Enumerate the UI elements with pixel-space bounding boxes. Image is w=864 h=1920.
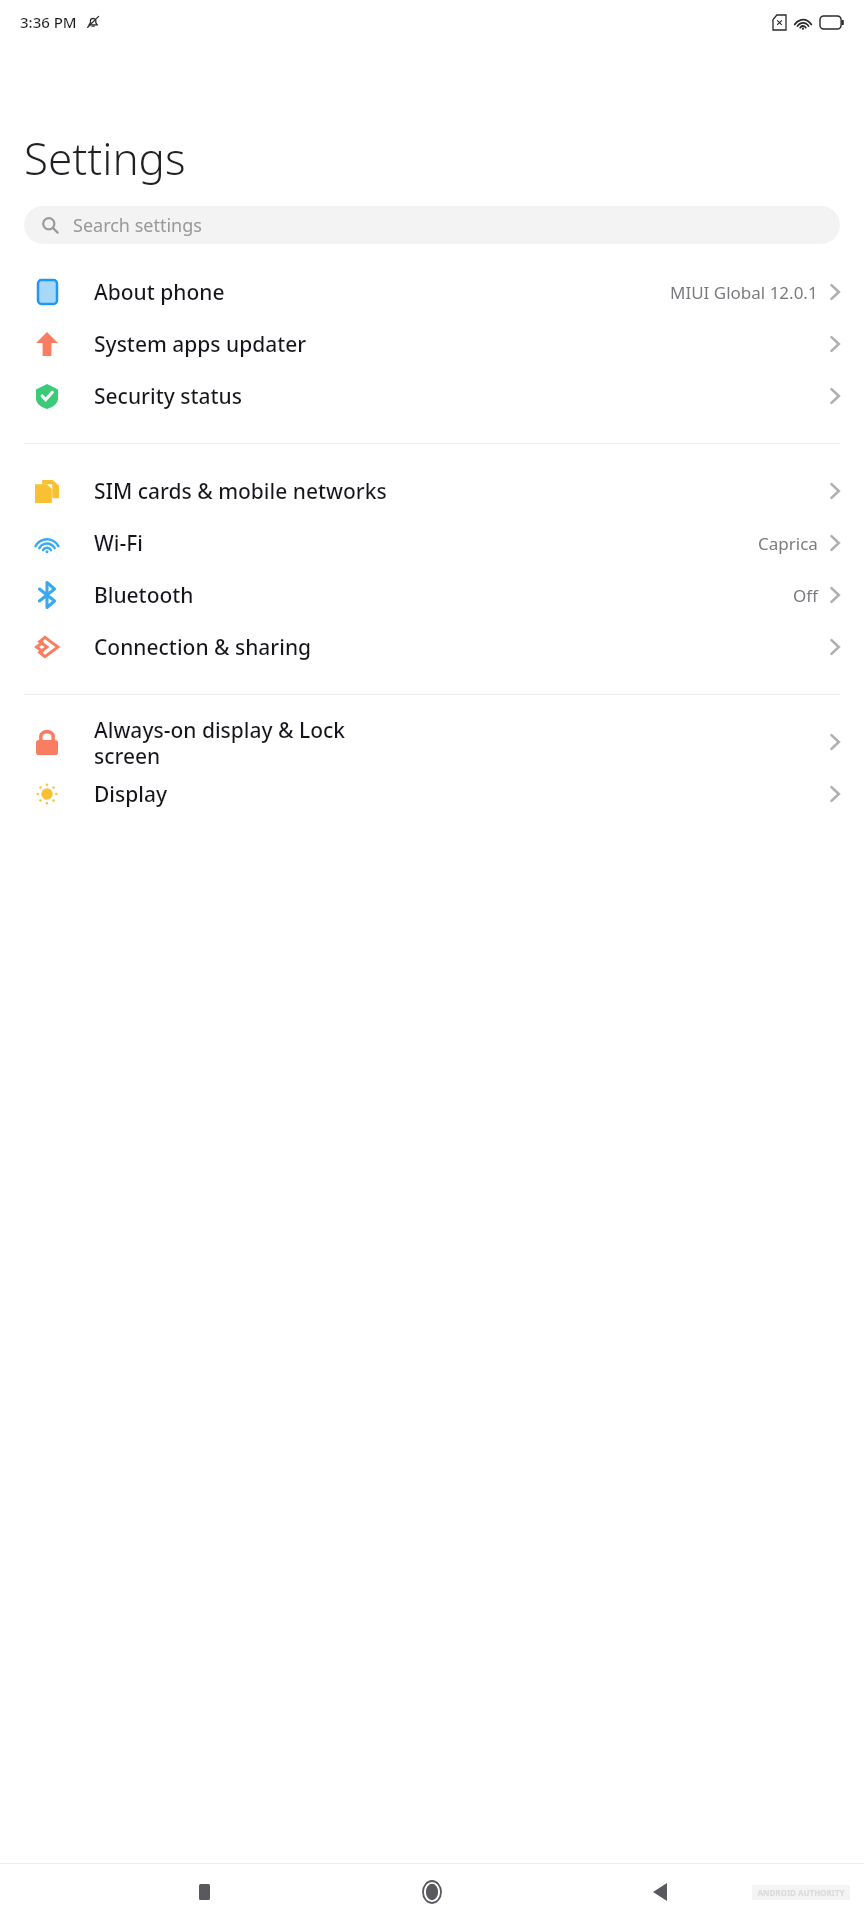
staticText: Always-on display & Lock screen [94, 716, 830, 768]
staticText: Bluetooth [94, 581, 793, 610]
button[interactable]: About phone [0, 266, 864, 318]
staticText: ANDROID AUTHORITY [757, 1887, 845, 1898]
button[interactable]: Always-on display & Lock screen [0, 716, 864, 768]
staticText: SIM cards & mobile networks [94, 477, 830, 506]
staticText: Settings [24, 128, 186, 188]
staticText: Security status [94, 382, 830, 411]
button[interactable]: Bluetooth [0, 569, 864, 621]
staticText: Wi-Fi [94, 529, 758, 558]
button[interactable]: Home [408, 1868, 456, 1916]
staticText: Off [793, 584, 818, 607]
button[interactable]: SIM cards & mobile networks [0, 465, 864, 517]
staticText: System apps updater [94, 330, 830, 359]
staticText: Caprica [758, 532, 818, 555]
button[interactable]: Display [0, 768, 864, 820]
button[interactable]: Wi-Fi [0, 517, 864, 569]
staticText: MIUI Global 12.0.1 [670, 281, 818, 304]
staticText: Display [94, 780, 830, 809]
button[interactable]: System apps updater [0, 318, 864, 370]
button[interactable]: Connection & sharing [0, 621, 864, 673]
staticText: Search settings [73, 213, 202, 238]
button[interactable]: Recent apps [180, 1868, 228, 1916]
staticText: Connection & sharing [94, 633, 830, 662]
staticText: 3:36 PM [20, 12, 77, 32]
button[interactable]: Security status [0, 370, 864, 422]
button[interactable]: Back [636, 1868, 684, 1916]
staticText: About phone [94, 278, 670, 307]
button[interactable]: Search settings [24, 206, 840, 244]
